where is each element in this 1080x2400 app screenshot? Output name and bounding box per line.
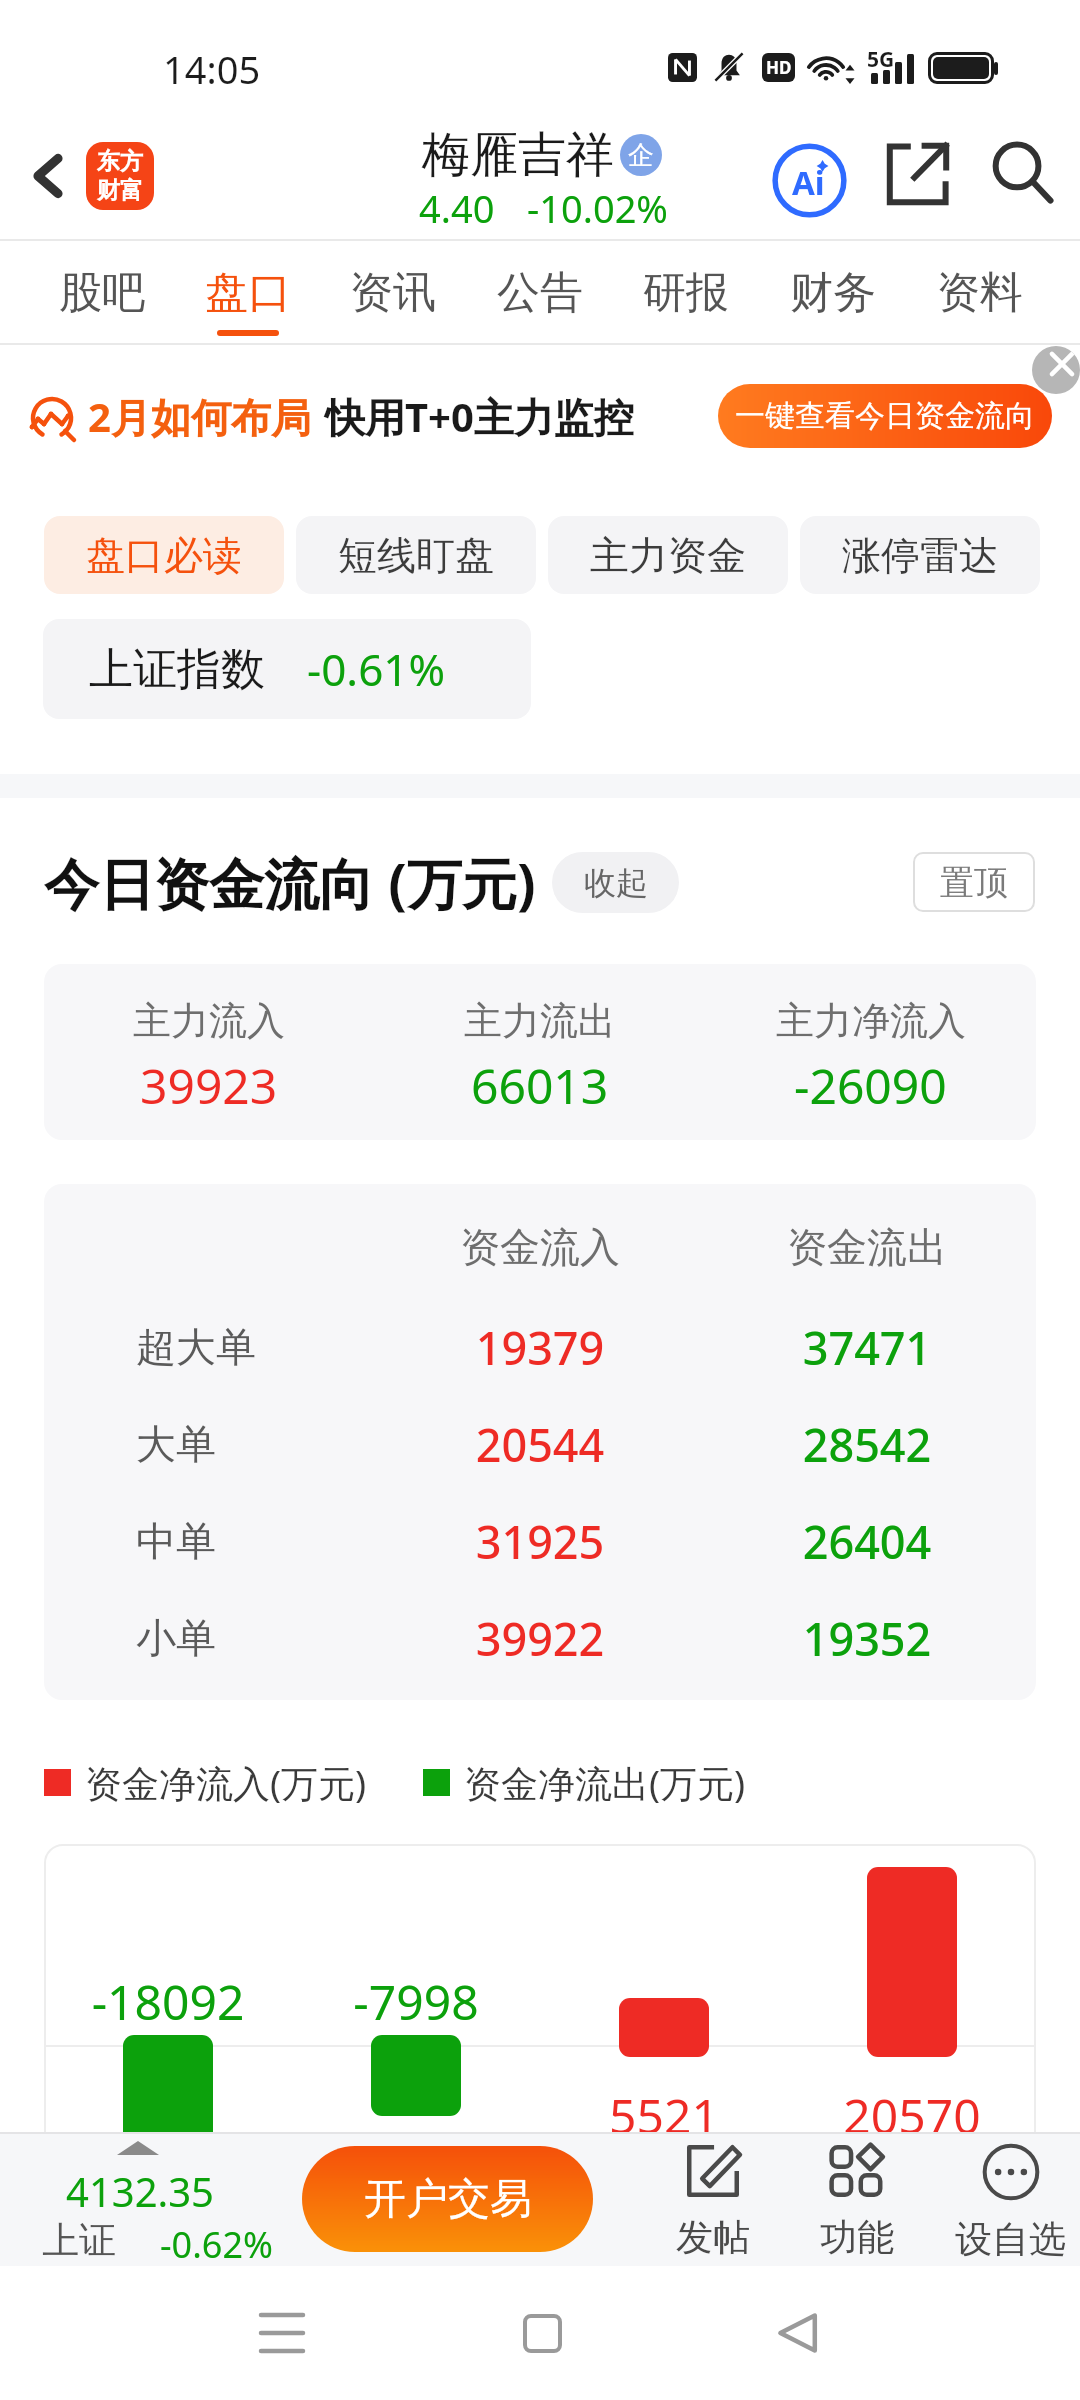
staticText: 短线盯盘: [338, 531, 494, 580]
button[interactable]: 涨停雷达: [800, 516, 1040, 594]
staticText: -0.61%: [307, 639, 446, 699]
button[interactable]: Back: [753, 2288, 843, 2378]
staticText: 5G: [867, 45, 895, 74]
staticText: 37471: [767, 1317, 967, 1378]
button[interactable]: AI assistant: [764, 135, 854, 225]
staticText: 主力流入: [133, 997, 285, 1045]
staticText: 盘口必读: [86, 531, 242, 580]
staticText: 置顶: [940, 861, 1008, 904]
button[interactable]: Add to watchlist: [939, 2144, 1080, 2263]
staticText: 资金净流出(万元): [464, 1757, 746, 1808]
staticText: 大单: [136, 1419, 216, 1469]
staticText: 资金净流入(万元): [85, 1757, 367, 1808]
button[interactable]: 收起: [552, 852, 679, 913]
staticText: 主力净流入: [776, 997, 966, 1045]
button[interactable]: Recent apps: [237, 2288, 327, 2378]
button[interactable]: 置顶: [913, 852, 1035, 912]
staticText: 超大单: [136, 1322, 256, 1372]
staticText: 66013: [471, 1053, 609, 1118]
staticText: 28542: [767, 1414, 967, 1475]
button[interactable]: 研报: [622, 241, 750, 345]
staticText: -10.02%: [527, 182, 668, 234]
staticText: 梅雁吉祥: [422, 125, 614, 185]
staticText: 资金流入: [460, 1222, 620, 1272]
button[interactable]: 主力资金: [548, 516, 788, 594]
button[interactable]: 资料: [916, 241, 1044, 345]
staticText: 上证: [42, 2217, 116, 2264]
staticText: 财务: [790, 266, 876, 320]
staticText: 盘口: [205, 266, 291, 320]
staticText: 财富: [97, 176, 143, 205]
staticText: 2月如何布局: [88, 389, 311, 444]
staticText: -18092: [44, 1969, 292, 2034]
staticText: 开户交易: [364, 2173, 532, 2226]
staticText: 4.40: [419, 182, 495, 234]
staticText: 一键查看今日资金流向: [735, 397, 1035, 435]
staticText: 5521: [540, 2083, 788, 2148]
staticText: 26404: [767, 1511, 967, 1572]
staticText: 公告: [497, 266, 583, 320]
staticText: 主力流出: [464, 997, 616, 1045]
button[interactable]: 短线盯盘: [296, 516, 536, 594]
button[interactable]: Home: [497, 2288, 587, 2378]
staticText: 收起: [584, 863, 648, 903]
staticText: 20570: [788, 2083, 1036, 2148]
staticText: 发帖: [676, 2214, 750, 2261]
staticText: 设自选: [955, 2216, 1066, 2263]
staticText: 4132.35: [66, 2164, 214, 2218]
staticText: 资讯: [350, 266, 436, 320]
button[interactable]: 公告: [476, 241, 604, 345]
staticText: 19379: [440, 1317, 640, 1378]
staticText: 涨停雷达: [842, 531, 998, 580]
button[interactable]: 开户交易: [302, 2146, 593, 2252]
button[interactable]: Back: [8, 136, 88, 216]
button[interactable]: 财务: [769, 241, 897, 345]
button[interactable]: 股吧: [38, 241, 166, 345]
staticText: 快用T+0主力监控: [325, 389, 634, 444]
staticText: 39922: [440, 1608, 640, 1669]
staticText: 企: [628, 139, 654, 172]
staticText: 31925: [440, 1511, 640, 1572]
staticText: -26090: [794, 1053, 947, 1118]
staticText: 东方: [97, 147, 143, 176]
button[interactable]: Close ad: [1032, 346, 1080, 394]
button[interactable]: Search: [977, 129, 1067, 219]
button[interactable]: 资讯: [329, 241, 457, 345]
staticText: Ai: [792, 160, 825, 205]
staticText: -7998: [292, 1969, 540, 2034]
button[interactable]: Share: [873, 129, 963, 219]
button[interactable]: 4132.35: [20, 2146, 300, 2264]
staticText: 资料: [937, 266, 1023, 320]
staticText: 小单: [136, 1613, 216, 1663]
staticText: 今日资金流向 (万元): [44, 845, 536, 920]
button[interactable]: 盘口必读: [44, 516, 284, 594]
staticText: 14:05: [163, 43, 261, 95]
button[interactable]: Functions: [804, 2144, 910, 2261]
button[interactable]: 盘口: [184, 241, 312, 345]
staticText: 39923: [140, 1053, 278, 1118]
staticText: -0.62%: [160, 2220, 273, 2269]
button[interactable]: Post: [660, 2144, 766, 2261]
staticText: 研报: [643, 266, 729, 320]
staticText: 19352: [767, 1608, 967, 1669]
staticText: 上证指数: [89, 642, 265, 697]
staticText: 中单: [136, 1516, 216, 1566]
staticText: 主力资金: [590, 531, 746, 580]
button[interactable]: East Money: [86, 142, 154, 210]
staticText: 功能: [820, 2214, 894, 2261]
staticText: 股吧: [59, 266, 145, 320]
button[interactable]: 一键查看今日资金流向: [718, 384, 1052, 448]
button[interactable]: 上证指数: [43, 619, 531, 719]
staticText: 20544: [440, 1414, 640, 1475]
staticText: HD: [766, 56, 792, 79]
staticText: 资金流出: [787, 1222, 947, 1272]
